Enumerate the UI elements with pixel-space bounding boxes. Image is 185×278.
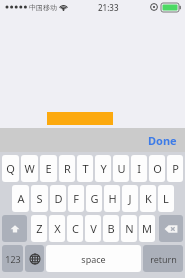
- staticText: L: [163, 191, 169, 206]
- button[interactable]: C: [67, 215, 83, 242]
- button[interactable]: space: [46, 245, 141, 272]
- staticText: I: [137, 161, 141, 176]
- button[interactable]: W: [21, 155, 38, 182]
- staticText: P: [172, 161, 179, 176]
- button[interactable]: Backspace: [159, 215, 183, 242]
- staticText: return: [150, 253, 177, 265]
- staticText: N: [125, 221, 134, 236]
- staticText: F: [73, 191, 79, 206]
- staticText: Done: [148, 133, 177, 148]
- button[interactable]: Z: [31, 215, 47, 242]
- button[interactable]: 123: [2, 245, 23, 272]
- staticText: E: [45, 161, 52, 176]
- staticText: X: [54, 221, 61, 236]
- staticText: B: [107, 221, 115, 236]
- button[interactable]: J: [122, 185, 138, 212]
- button[interactable]: V: [85, 215, 101, 242]
- staticText: G: [90, 191, 99, 206]
- staticText: Z: [36, 221, 43, 236]
- button[interactable]: R: [59, 155, 75, 182]
- button[interactable]: B: [103, 215, 119, 242]
- button[interactable]: I: [131, 155, 147, 182]
- button[interactable]: X: [49, 215, 65, 242]
- button[interactable]: F: [68, 185, 84, 212]
- button[interactable]: H: [104, 185, 120, 212]
- staticText: O: [153, 161, 162, 176]
- button[interactable]: N: [121, 215, 137, 242]
- staticText: 123: [5, 253, 21, 265]
- button[interactable]: L: [158, 185, 174, 212]
- staticText: 中国移动: [29, 3, 57, 12]
- button[interactable]: E: [40, 155, 57, 182]
- button[interactable]: Y: [95, 155, 111, 182]
- button[interactable]: K: [140, 185, 156, 212]
- button[interactable]: Switch keyboard language: [25, 245, 44, 272]
- staticText: Q: [6, 161, 15, 176]
- staticText: D: [54, 191, 63, 206]
- button[interactable]: O: [149, 155, 165, 182]
- button[interactable]: D: [50, 185, 66, 212]
- staticText: M: [142, 221, 152, 236]
- button[interactable]: M: [139, 215, 155, 242]
- button[interactable]: P: [167, 155, 183, 182]
- staticText: A: [17, 191, 25, 206]
- button[interactable]: T: [77, 155, 93, 182]
- button[interactable]: Q: [2, 155, 19, 182]
- staticText: 21:33: [98, 2, 119, 13]
- button[interactable]: U: [113, 155, 129, 182]
- staticText: H: [108, 191, 117, 206]
- button[interactable]: A: [12, 185, 29, 212]
- staticText: S: [36, 191, 43, 206]
- staticText: J: [128, 191, 132, 206]
- staticText: R: [64, 161, 71, 176]
- button[interactable]: G: [86, 185, 102, 212]
- staticText: space: [81, 253, 106, 265]
- staticText: Y: [100, 161, 107, 176]
- button[interactable]: return: [143, 245, 183, 272]
- staticText: U: [117, 161, 126, 176]
- staticText: W: [24, 161, 35, 176]
- staticText: K: [145, 191, 152, 206]
- staticText: V: [90, 221, 97, 236]
- button[interactable]: Shift: [2, 215, 27, 242]
- button[interactable]: Done: [140, 128, 185, 152]
- staticText: C: [72, 221, 79, 236]
- button[interactable]: S: [31, 185, 48, 212]
- staticText: T: [82, 161, 89, 176]
